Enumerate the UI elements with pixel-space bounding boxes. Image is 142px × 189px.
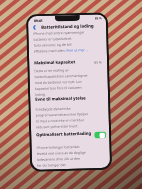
staticText: 85 % (95, 16, 102, 20)
staticText: 09:41 (34, 18, 43, 23)
staticText: iPhone forlenger batteriets levetid ved … (36, 144, 86, 168)
staticText: 85 % (94, 60, 102, 65)
staticText: Dette er en maling av batterikapasiteten… (34, 67, 89, 97)
staticText: Maksimal kapasitet (34, 59, 76, 66)
button[interactable]: Back (31, 24, 38, 31)
button[interactable]: Optimalisert batterilading (94, 131, 106, 139)
staticText: iPhone med andre nyanseringer batterier … (33, 29, 89, 53)
staticText: Innebygde dynamiske programvaremekanisme… (35, 105, 89, 129)
staticText: Evne til maksimal ytelse (35, 95, 86, 103)
staticText: Batteritilstand og lading (41, 22, 94, 30)
staticText: Optimalisert batterilading (36, 131, 91, 138)
